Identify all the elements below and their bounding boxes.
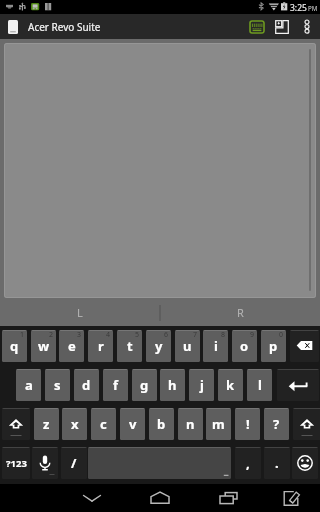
staticText: R xyxy=(237,305,244,320)
staticText: 2 xyxy=(49,330,54,340)
button[interactable]: f xyxy=(103,369,128,401)
staticText: 3 xyxy=(77,330,82,340)
staticText: 1 xyxy=(20,330,25,340)
button[interactable]: w xyxy=(31,330,56,362)
button[interactable]: Shift xyxy=(2,408,30,440)
staticText: 9 xyxy=(250,330,255,340)
button[interactable]: Voice input xyxy=(32,447,58,479)
staticText: 6 xyxy=(164,330,169,340)
staticText: e xyxy=(68,337,76,355)
button[interactable]: L xyxy=(0,299,159,326)
button[interactable]: h xyxy=(160,369,185,401)
button[interactable]: a xyxy=(16,369,41,401)
button[interactable]: m xyxy=(206,408,231,440)
staticText: o xyxy=(240,337,249,355)
button[interactable]: Enter xyxy=(277,369,319,401)
button[interactable]: e xyxy=(59,330,84,362)
button[interactable]: , xyxy=(235,447,261,479)
staticText: 8 xyxy=(221,330,226,340)
button[interactable]: i xyxy=(203,330,228,362)
button[interactable]: R xyxy=(161,299,320,326)
button[interactable]: q xyxy=(2,330,27,362)
button[interactable]: c xyxy=(91,408,116,440)
staticText: Acer Revo Suite xyxy=(28,20,101,34)
button[interactable]: x xyxy=(62,408,87,440)
staticText: x xyxy=(71,415,79,433)
button[interactable]: j xyxy=(189,369,214,401)
button[interactable]: ! xyxy=(235,408,260,440)
staticText: u xyxy=(183,337,192,355)
button[interactable]: New window xyxy=(268,14,296,39)
button[interactable]: s xyxy=(45,369,70,401)
staticText: k xyxy=(226,376,235,394)
staticText: n xyxy=(186,415,195,433)
button[interactable]: y xyxy=(146,330,171,362)
staticText: v xyxy=(129,415,137,433)
button[interactable]: Home xyxy=(130,484,190,512)
staticText: PM xyxy=(308,4,318,12)
staticText: , xyxy=(246,454,250,472)
staticText: w xyxy=(38,337,50,355)
button[interactable]: Keyboard xyxy=(243,14,271,39)
staticText: L xyxy=(77,305,83,320)
button[interactable]: / xyxy=(61,447,87,479)
button[interactable]: n xyxy=(178,408,203,440)
staticText: q xyxy=(10,337,19,355)
button[interactable]: p xyxy=(261,330,286,362)
staticText: b xyxy=(157,415,166,433)
button[interactable]: . xyxy=(264,447,290,479)
button[interactable]: t xyxy=(117,330,142,362)
staticText: s xyxy=(54,376,61,394)
staticText: h xyxy=(168,376,177,394)
button[interactable]: Shift xyxy=(293,408,320,440)
staticText: ?123 xyxy=(6,457,27,470)
button[interactable]: z xyxy=(34,408,59,440)
button[interactable]: l xyxy=(247,369,272,401)
staticText: m xyxy=(212,415,225,433)
button[interactable]: Symbols xyxy=(2,447,30,479)
staticText: j xyxy=(200,376,204,394)
button[interactable]: Backspace xyxy=(290,330,319,362)
button[interactable]: Compose xyxy=(263,484,320,512)
staticText: l xyxy=(258,376,262,394)
staticText: p xyxy=(269,337,278,355)
staticText: r xyxy=(98,337,104,355)
staticText: d xyxy=(82,376,91,394)
staticText: g xyxy=(140,376,149,394)
staticText: z xyxy=(43,415,50,433)
button[interactable]: More options xyxy=(298,14,316,39)
button[interactable]: b xyxy=(149,408,174,440)
button[interactable]: Emoji xyxy=(292,447,318,479)
button[interactable]: Space xyxy=(88,447,231,479)
button[interactable]: k xyxy=(218,369,243,401)
staticText: 4 xyxy=(106,330,111,340)
staticText: c xyxy=(100,415,107,433)
staticText: ? xyxy=(273,415,280,433)
staticText: ! xyxy=(246,415,250,433)
staticText: f xyxy=(113,376,119,394)
staticText: 5 xyxy=(135,330,140,340)
staticText: . xyxy=(275,454,279,472)
staticText: t xyxy=(127,337,133,355)
staticText: 3:25 xyxy=(290,2,307,14)
button[interactable]: r xyxy=(88,330,113,362)
staticText: i xyxy=(214,337,218,355)
button[interactable]: d xyxy=(74,369,99,401)
staticText: y xyxy=(155,337,163,355)
button[interactable]: Hide keyboard xyxy=(62,484,122,512)
button[interactable]: u xyxy=(175,330,200,362)
button[interactable]: ? xyxy=(264,408,289,440)
button[interactable]: o xyxy=(232,330,257,362)
staticText: 7 xyxy=(193,330,198,340)
button[interactable]: Recent apps xyxy=(199,484,259,512)
staticText: / xyxy=(71,454,77,472)
staticText: 0 xyxy=(279,330,284,340)
staticText: a xyxy=(25,376,33,394)
button[interactable]: g xyxy=(132,369,157,401)
button[interactable]: v xyxy=(120,408,145,440)
